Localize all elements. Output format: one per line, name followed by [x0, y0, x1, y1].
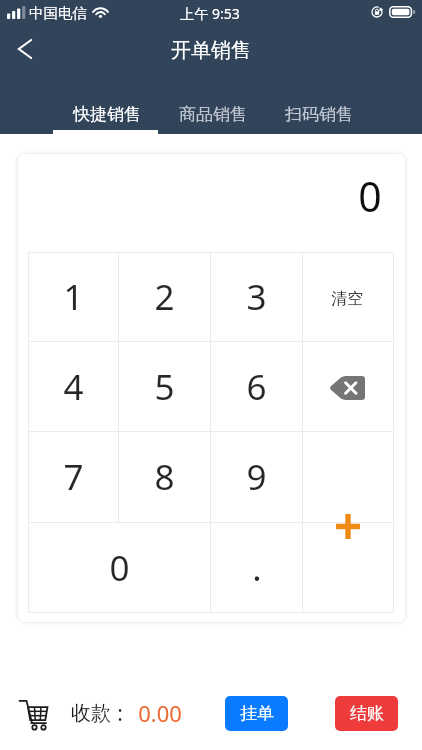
- button[interactable]: 3: [211, 252, 302, 341]
- button[interactable]: Add: [303, 432, 394, 522]
- button[interactable]: Plus: [303, 523, 394, 613]
- button[interactable]: 商品销售: [158, 76, 264, 134]
- staticText: 挂单: [240, 703, 274, 724]
- staticText: 2: [154, 273, 175, 321]
- button[interactable]: 结账: [335, 696, 398, 731]
- staticText: 清空: [331, 289, 363, 309]
- button[interactable]: 7: [28, 432, 118, 522]
- staticText: 0.00: [138, 698, 182, 728]
- button[interactable]: 6: [211, 342, 302, 431]
- staticText: 开单销售: [171, 38, 251, 63]
- staticText: .: [252, 544, 262, 592]
- button[interactable]: 挂单: [225, 696, 288, 731]
- staticText: 8: [154, 453, 175, 501]
- button[interactable]: Back: [2, 26, 48, 72]
- staticText: :: [117, 699, 123, 728]
- button[interactable]: 8: [119, 432, 210, 522]
- staticText: 收款: [71, 701, 111, 726]
- staticText: 1: [63, 273, 84, 321]
- staticText: 商品销售: [179, 104, 247, 125]
- staticText: 9: [246, 453, 267, 501]
- button[interactable]: 2: [119, 252, 210, 341]
- button[interactable]: Backspace: [303, 342, 394, 431]
- button[interactable]: 0: [28, 523, 210, 613]
- staticText: 5: [154, 363, 175, 411]
- staticText: 0: [109, 544, 130, 592]
- staticText: 7: [63, 453, 84, 501]
- button[interactable]: 快捷销售: [52, 76, 158, 134]
- button[interactable]: .: [211, 523, 302, 613]
- staticText: 结账: [350, 703, 384, 724]
- button[interactable]: 5: [119, 342, 210, 431]
- staticText: 快捷销售: [73, 104, 141, 125]
- staticText: 扫码销售: [285, 104, 353, 125]
- staticText: 中国电信: [29, 4, 87, 22]
- button[interactable]: Add item: [302, 432, 394, 613]
- other: Cart: [18, 699, 49, 730]
- button[interactable]: 9: [211, 432, 302, 522]
- staticText: 3: [246, 273, 267, 321]
- button[interactable]: 4: [28, 342, 118, 431]
- staticText: 4: [63, 363, 84, 411]
- button[interactable]: 清空: [303, 252, 394, 341]
- button[interactable]: 1: [28, 252, 118, 341]
- staticText: 6: [246, 363, 267, 411]
- staticText: 上午 9:53: [180, 4, 240, 23]
- staticText: 0: [358, 168, 382, 224]
- button[interactable]: 扫码销售: [264, 76, 370, 134]
